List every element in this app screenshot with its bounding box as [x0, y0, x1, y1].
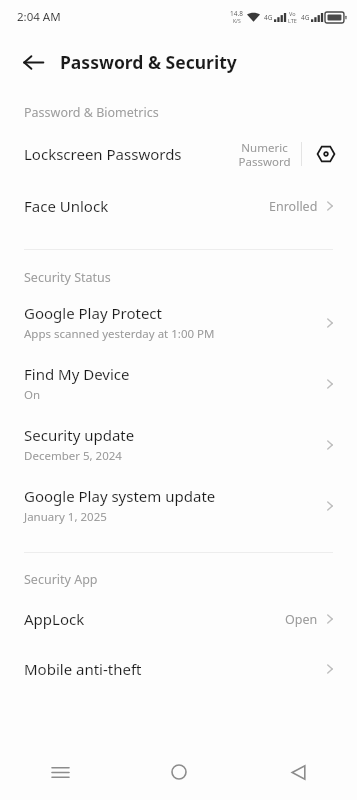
staticText: Mobile anti-theft: [24, 659, 323, 679]
staticText: Lockscreen Passwords: [24, 144, 238, 164]
button[interactable]: Google Play Protect: [0, 292, 357, 353]
staticText: January 1, 2025: [24, 509, 107, 525]
button[interactable]: Back: [276, 750, 320, 794]
staticText: Enrolled: [269, 198, 318, 215]
button[interactable]: Recent apps: [38, 750, 82, 794]
staticText: Find My Device: [24, 364, 130, 384]
button[interactable]: Back: [14, 43, 52, 81]
button[interactable]: Mobile anti-theft: [0, 644, 357, 694]
staticText: Numeric Password: [238, 140, 291, 169]
staticText: Open: [285, 611, 318, 628]
button[interactable]: Find My Device: [0, 353, 357, 414]
staticText: Security App: [24, 571, 98, 588]
staticText: Face Unlock: [24, 196, 269, 216]
staticText: On: [24, 387, 41, 403]
staticText: Security Status: [24, 269, 111, 286]
staticText: Security update: [24, 425, 135, 445]
button[interactable]: Google Play system update: [0, 475, 357, 536]
staticText: 4G: [301, 13, 310, 22]
button[interactable]: AppLock: [0, 594, 357, 644]
staticText: AppLock: [24, 609, 285, 629]
staticText: December 5, 2024: [24, 448, 122, 464]
staticText: K/S: [233, 18, 241, 25]
staticText: LTE: [288, 17, 297, 24]
staticText: Google Play Protect: [24, 303, 162, 323]
button[interactable]: Home: [157, 750, 201, 794]
staticText: Google Play system update: [24, 486, 216, 506]
staticText: 4G: [264, 13, 273, 22]
button[interactable]: Face Unlock: [0, 181, 357, 231]
staticText: Vo: [289, 10, 296, 17]
staticText: 2:04 AM: [17, 9, 61, 25]
staticText: Password & Security: [60, 50, 237, 74]
button[interactable]: Lockscreen password settings: [311, 139, 341, 169]
button[interactable]: Lockscreen Passwords: [0, 127, 357, 181]
staticText: Apps scanned yesterday at 1:00 PM: [24, 326, 215, 342]
staticText: 14.8: [230, 9, 243, 18]
staticText: Password & Biometrics: [24, 104, 159, 121]
button[interactable]: Security update: [0, 414, 357, 475]
